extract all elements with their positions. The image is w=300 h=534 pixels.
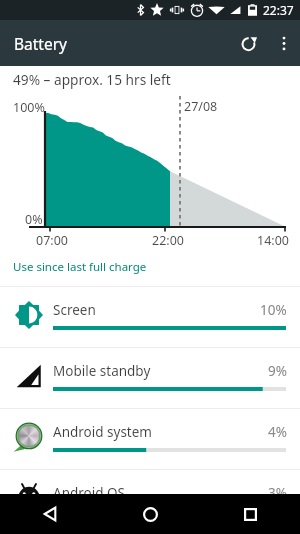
- staticText: 27/08: [184, 98, 218, 115]
- button[interactable]: More options: [268, 20, 300, 66]
- button[interactable]: Android system: [0, 409, 300, 469]
- staticText: 07:00: [36, 232, 68, 249]
- button[interactable]: Mobile standby: [0, 348, 300, 408]
- staticText: 22:00: [152, 232, 184, 249]
- staticText: 4%: [268, 423, 287, 441]
- staticText: 0%: [25, 211, 43, 228]
- button[interactable]: Recents: [200, 494, 300, 534]
- staticText: 14:00: [257, 232, 289, 249]
- staticText: 49% – approx. 15 hrs left: [13, 70, 171, 89]
- staticText: Screen: [53, 301, 96, 319]
- button[interactable]: Refresh: [228, 20, 268, 66]
- staticText: 3%: [268, 484, 287, 502]
- staticText: 22:37: [263, 2, 294, 18]
- button[interactable]: Home: [100, 494, 200, 534]
- staticText: Mobile standby: [53, 362, 151, 380]
- staticText: 10%: [260, 301, 287, 319]
- button[interactable]: Screen: [0, 287, 300, 347]
- button[interactable]: Android OS: [0, 470, 300, 530]
- staticText: Battery: [14, 33, 68, 54]
- staticText: 9%: [268, 362, 287, 380]
- staticText: Android OS: [53, 484, 125, 502]
- button[interactable]: Back: [0, 494, 100, 534]
- staticText: Android system: [53, 423, 152, 441]
- button[interactable]: Use since last full charge: [13, 259, 147, 275]
- staticText: 100%: [13, 99, 45, 116]
